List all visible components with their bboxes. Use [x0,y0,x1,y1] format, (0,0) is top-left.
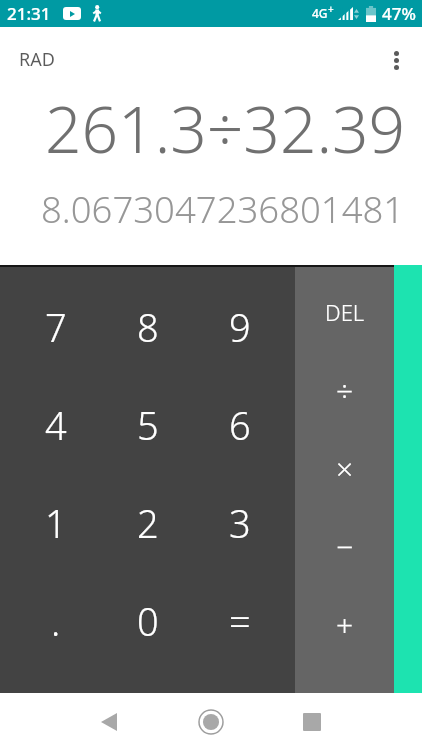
staticText: 5 [137,399,159,451]
button[interactable]: 4 [10,376,102,474]
staticText: RAD [19,47,55,72]
staticText: 7 [45,301,67,353]
button[interactable]: More options [376,40,416,80]
staticText: 21:31 [7,2,51,25]
button[interactable]: 2 [102,474,194,572]
staticText: 1 [45,497,67,549]
staticText: − [336,526,354,567]
button[interactable]: 9 [194,278,286,376]
button[interactable]: 3 [194,474,286,572]
button[interactable]: 0 [102,572,194,670]
staticText: 8 [137,301,159,353]
button[interactable]: DEL [295,273,394,351]
button[interactable]: 1 [10,474,102,572]
button[interactable]: 6 [194,376,286,474]
button[interactable]: × [295,429,394,507]
button[interactable]: . [10,572,102,670]
staticText: 8.0673047236801481 [41,184,405,234]
button[interactable]: − [295,507,394,585]
staticText: 261.3÷32.39 [45,85,406,172]
staticText: 4 [45,399,67,451]
staticText: ÷ [336,370,354,411]
staticText: = [229,595,251,647]
staticText: . [51,595,61,647]
button[interactable]: 8 [102,278,194,376]
button[interactable]: + [295,585,394,663]
button[interactable]: 7 [10,278,102,376]
staticText: + [336,604,354,645]
button[interactable]: = [194,572,286,670]
staticText: 3 [229,497,251,549]
staticText: DEL [325,297,365,327]
staticText: 0 [137,595,159,647]
button[interactable]: Home [181,693,241,750]
button[interactable]: Back [79,693,139,750]
staticText: 2 [137,497,159,549]
staticText: 47% [382,2,416,25]
staticText: 6 [229,399,251,451]
button[interactable]: RAD [11,42,63,77]
staticText: 9 [229,301,251,353]
button[interactable]: 5 [102,376,194,474]
staticText: + [328,2,334,16]
button[interactable]: Recent apps [282,693,342,750]
staticText: × [336,448,354,489]
button[interactable]: ÷ [295,351,394,429]
staticText: 4G [312,5,328,21]
